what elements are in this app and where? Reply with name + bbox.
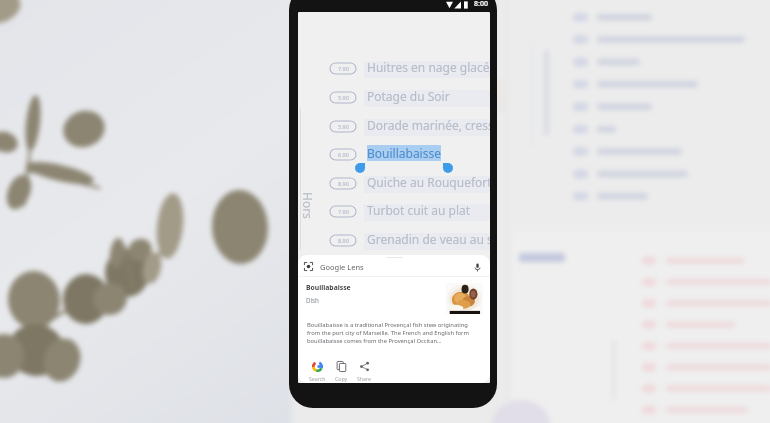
staticText: Huitres en nage glacée — [367, 59, 490, 75]
staticText: Dish — [306, 296, 319, 304]
button[interactable]: Search — [306, 361, 328, 382]
button[interactable]: Potage du Soir — [367, 88, 450, 104]
button[interactable]: Bouillabaisse — [367, 145, 441, 161]
button[interactable]: 7.90 — [298, 202, 490, 222]
staticText: Bouillabaisse is a traditional Provençal… — [307, 321, 480, 345]
button[interactable]: Google Lens — [304, 259, 484, 274]
staticText: Bouillabaisse — [306, 283, 351, 292]
button[interactable]: 5.90 — [298, 117, 490, 137]
button[interactable]: 5.90 — [298, 88, 490, 108]
button[interactable]: 7.90 — [330, 63, 356, 74]
button[interactable]: Voice search — [470, 260, 484, 274]
button[interactable]: Selection end handle — [443, 163, 453, 173]
button[interactable]: 5.90 — [330, 92, 356, 103]
button[interactable]: Quiche au Rouquefort — [367, 174, 490, 190]
button[interactable]: Share — [353, 361, 375, 382]
staticText: 7.90 — [338, 65, 349, 72]
button[interactable]: Selection start handle — [355, 163, 365, 173]
staticText: 8.90 — [338, 237, 349, 244]
staticText: 5.90 — [338, 94, 349, 101]
staticText: Copy — [335, 375, 348, 382]
staticText: Grenadin de veau au s — [367, 231, 490, 247]
button[interactable]: 7.90 — [298, 59, 490, 79]
button[interactable]: 8.90 — [330, 235, 356, 246]
button[interactable]: Turbot cuit au plat — [367, 202, 471, 218]
button[interactable]: 7.90 — [330, 206, 356, 217]
staticText: Search — [309, 375, 326, 382]
staticText: Bouillabaisse — [367, 145, 441, 161]
staticText: 6.90 — [338, 151, 349, 158]
button[interactable]: 6.90 — [298, 145, 490, 165]
staticText: 8:00 — [474, 0, 488, 9]
staticText: 8.90 — [338, 180, 349, 187]
staticText: 7.90 — [338, 208, 349, 215]
staticText: Quiche au Rouquefort — [367, 174, 490, 190]
staticText: Turbot cuit au plat — [367, 202, 471, 218]
button[interactable]: 5.90 — [330, 121, 356, 132]
button[interactable]: 6.90 — [330, 149, 356, 160]
staticText: 5.90 — [338, 123, 349, 130]
button[interactable]: 8.90 — [330, 178, 356, 189]
staticText: Hors D'œuvre — [298, 192, 316, 248]
button[interactable]: Copy — [330, 361, 352, 382]
staticText: Dorade marinée, cress — [367, 117, 490, 133]
button[interactable]: Dorade marinée, cress — [367, 117, 490, 133]
button[interactable]: 8.90 — [298, 231, 490, 251]
button[interactable]: 8.90 — [298, 174, 490, 194]
button[interactable]: Grenadin de veau au s — [367, 231, 490, 247]
staticText: Potage du Soir — [367, 88, 450, 104]
button[interactable]: Huitres en nage glacée — [367, 59, 490, 75]
staticText: Share — [357, 375, 371, 382]
staticText: Google Lens — [320, 262, 364, 272]
